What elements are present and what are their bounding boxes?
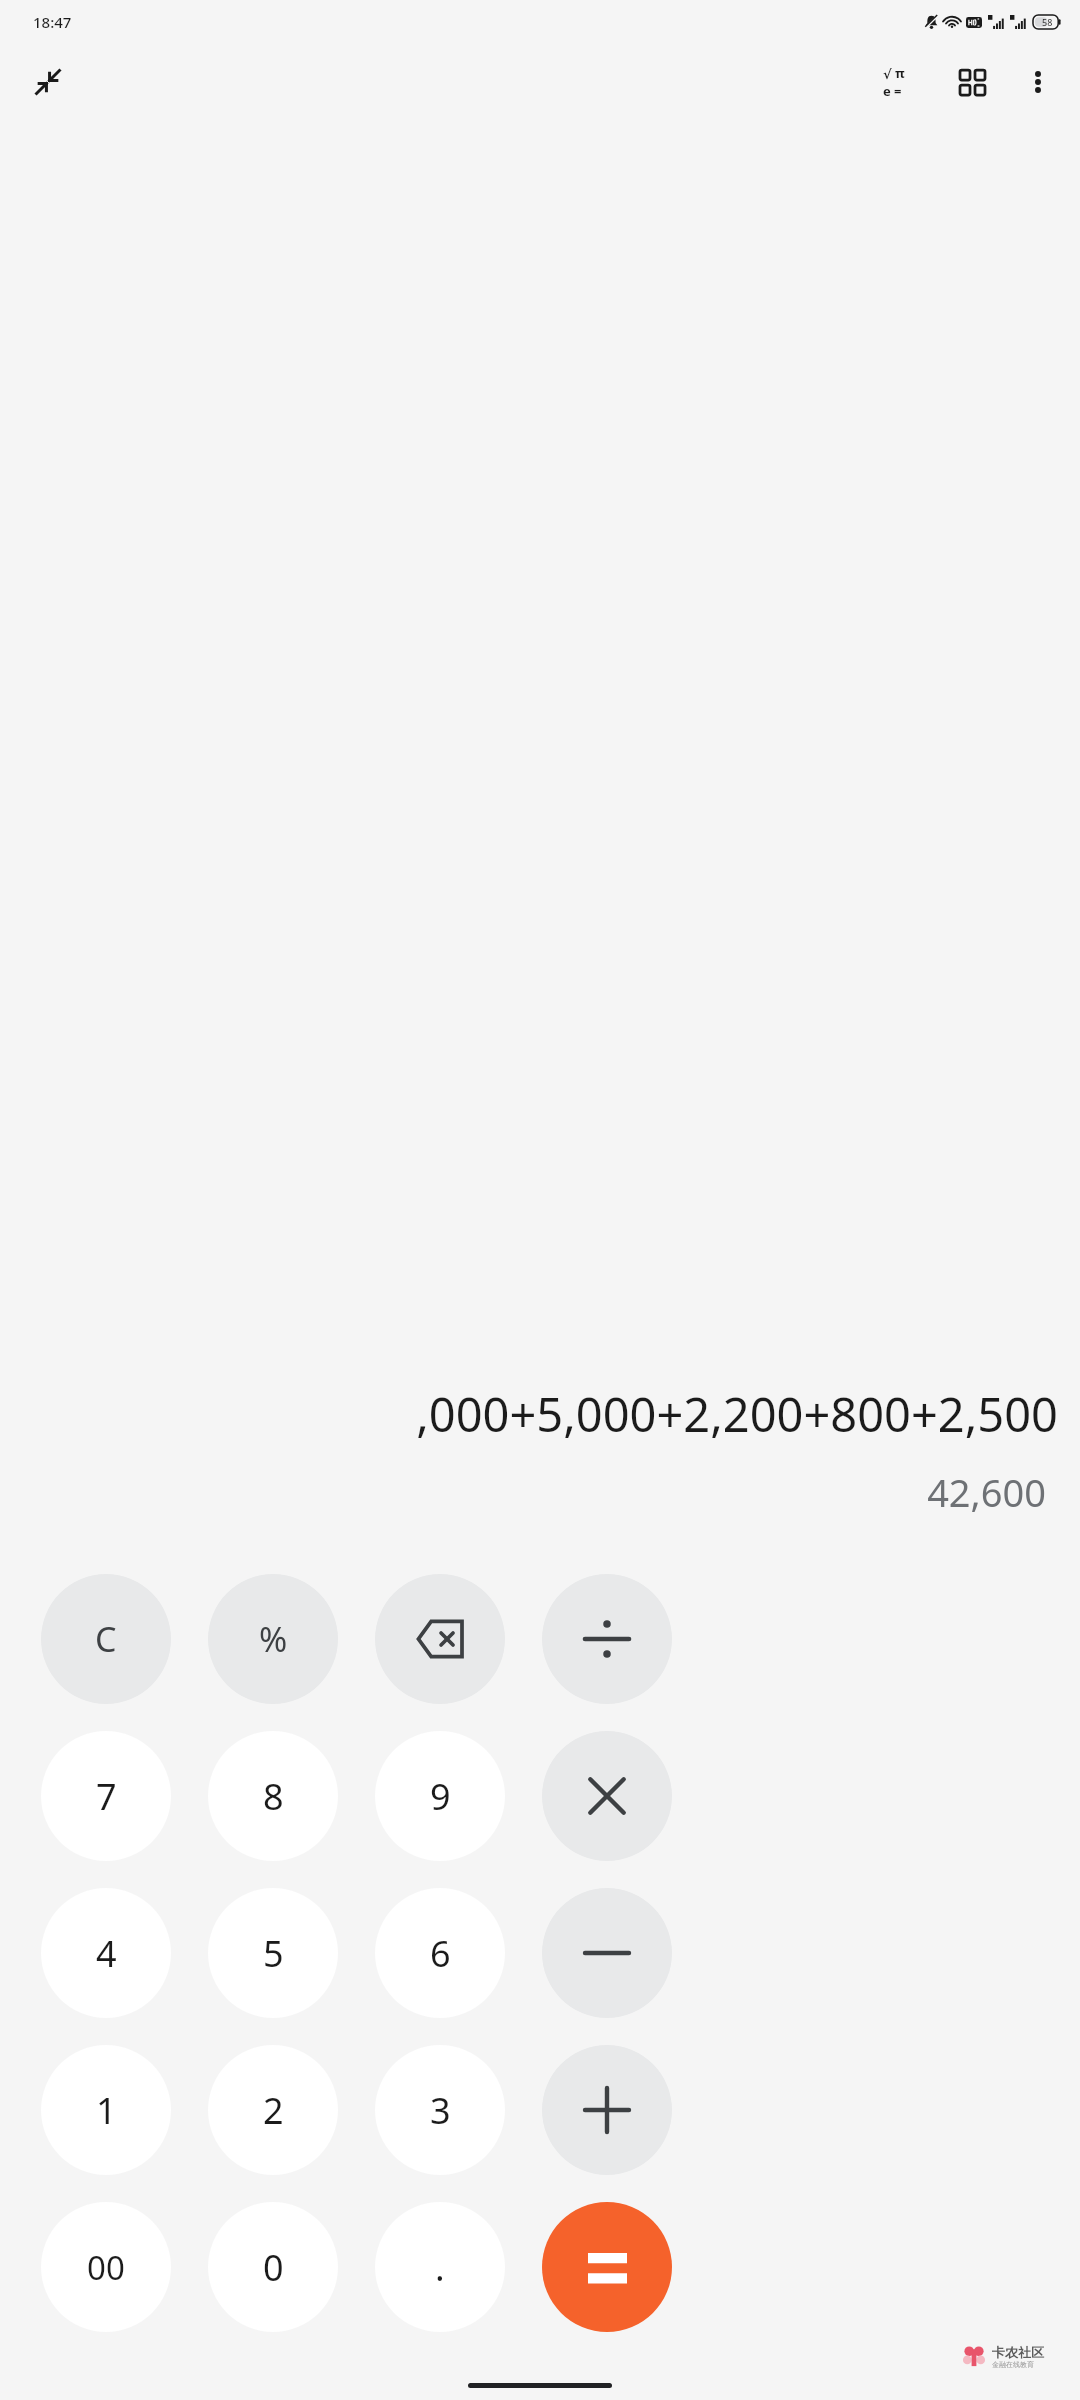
button[interactable]: 8 — [208, 1731, 338, 1861]
button[interactable]: Multiply — [542, 1731, 672, 1861]
button[interactable]: 3 — [375, 2045, 505, 2175]
staticText: 42,600 — [22, 1466, 1046, 1518]
staticText: 9 — [430, 1772, 451, 1821]
button[interactable]: 6 — [375, 1888, 505, 2018]
button[interactable]: Plus — [542, 2045, 672, 2175]
staticText: ,000+5,000+2,200+800+2,500 — [22, 1382, 1058, 1446]
staticText: √ — [883, 67, 892, 82]
staticText: 3 — [430, 2086, 451, 2135]
staticText: 1 — [96, 2086, 117, 2135]
button[interactable]: Equals — [542, 2202, 672, 2332]
staticText: π — [895, 64, 905, 82]
button[interactable]: Minus — [542, 1888, 672, 2018]
staticText: 00 — [87, 2245, 125, 2290]
staticText: 7 — [96, 1772, 117, 1821]
button[interactable]: Apps — [944, 54, 1000, 110]
button[interactable]: . — [375, 2202, 505, 2332]
staticText: 8 — [263, 1772, 284, 1821]
staticText: 0 — [263, 2243, 284, 2292]
staticText: 18:47 — [33, 12, 72, 32]
staticText: 2 — [263, 2086, 284, 2135]
button[interactable]: 7 — [41, 1731, 171, 1861]
button[interactable]: 0 — [208, 2202, 338, 2332]
button[interactable]: Collapse — [22, 56, 74, 108]
button[interactable]: 4 — [41, 1888, 171, 2018]
staticText: 4 — [96, 1929, 117, 1978]
button[interactable]: 1 — [41, 2045, 171, 2175]
button[interactable]: 9 — [375, 1731, 505, 1861]
staticText: 5 — [263, 1929, 284, 1978]
staticText: e — [883, 82, 891, 100]
staticText: = — [894, 82, 902, 100]
staticText: 金融在线教育 — [992, 2360, 1034, 2369]
button[interactable]: 2 — [208, 2045, 338, 2175]
staticText: 58 — [1042, 16, 1053, 28]
button[interactable]: Backspace — [375, 1574, 505, 1704]
button[interactable]: 5 — [208, 1888, 338, 2018]
button[interactable]: C — [41, 1574, 171, 1704]
staticText: 卡农社区 — [992, 2344, 1044, 2360]
button[interactable]: % — [208, 1574, 338, 1704]
staticText: . — [435, 2243, 445, 2292]
button[interactable]: Divide — [542, 1574, 672, 1704]
staticText: % — [259, 1616, 288, 1662]
staticText: C — [95, 1616, 117, 1662]
button[interactable]: 00 — [41, 2202, 171, 2332]
button[interactable]: Scientific mode — [872, 54, 928, 110]
staticText: 6 — [430, 1929, 451, 1978]
button[interactable]: More options — [1010, 54, 1066, 110]
